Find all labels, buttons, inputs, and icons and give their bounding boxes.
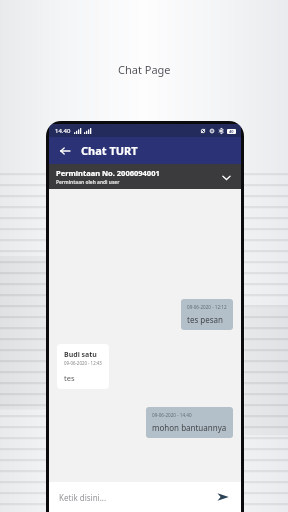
staticText: Chat TURT: [81, 143, 138, 158]
staticText: Budi satu: [64, 350, 97, 360]
staticText: Ketik disini...: [59, 492, 107, 503]
staticText: mohon bantuannya: [152, 422, 227, 433]
button[interactable]: Back: [57, 143, 73, 159]
staticText: 09-06-2020 - 12:12: [187, 304, 227, 310]
staticText: 09-06-2020 - 12:43: [64, 360, 102, 366]
button[interactable]: Budi satu: [57, 344, 109, 389]
staticText: 09-06-2020 - 14.40: [152, 412, 192, 418]
button[interactable]: 09-06-2020 - 14.40: [146, 407, 233, 438]
button[interactable]: Ketik disini...: [59, 492, 214, 503]
button[interactable]: Permintaan No. 2006094001: [49, 164, 241, 189]
staticText: Permintaan No. 2006094001: [56, 168, 160, 178]
staticText: Permintaan oleh andi user: [56, 179, 120, 186]
staticText: tes pesan: [187, 314, 224, 325]
button[interactable]: Send: [214, 488, 232, 506]
button[interactable]: 09-06-2020 - 12:12: [181, 299, 233, 330]
staticText: tes: [64, 373, 75, 383]
other: Expand: [218, 169, 234, 185]
staticText: 14.40: [55, 127, 71, 135]
staticText: Chat Page: [118, 62, 171, 77]
staticText: 40: [229, 129, 234, 134]
